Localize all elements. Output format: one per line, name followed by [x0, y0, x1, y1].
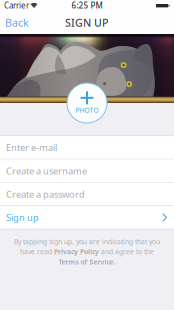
staticText: Create a password [6, 188, 85, 200]
staticText: Back [5, 15, 29, 30]
staticText: PHOTO [75, 106, 98, 115]
button[interactable]: Privacy Policy [54, 247, 99, 256]
staticText: 6:25 PM [71, 0, 102, 11]
staticText: and agree to the [99, 247, 154, 256]
button[interactable]: Create a password [0, 183, 174, 205]
button[interactable]: Terms of Service. [58, 257, 115, 266]
button[interactable]: Add photo [67, 83, 107, 123]
staticText: have read [20, 247, 54, 256]
staticText: Sign up [6, 211, 39, 224]
staticText: SIGN UP [65, 15, 109, 30]
button[interactable]: Back [0, 11, 39, 34]
staticText: Create a username [6, 165, 87, 177]
button[interactable]: Sign up [0, 206, 174, 229]
staticText: Carrier [4, 0, 29, 11]
staticText: Enter e-mail [6, 141, 57, 154]
staticText: By tapping sign up, you are indicating t… [14, 237, 160, 246]
button[interactable]: Enter e-mail [0, 136, 174, 159]
button[interactable]: Create a username [0, 159, 174, 182]
staticText: Terms of Service. [58, 257, 115, 266]
staticText: Privacy Policy [54, 247, 99, 256]
